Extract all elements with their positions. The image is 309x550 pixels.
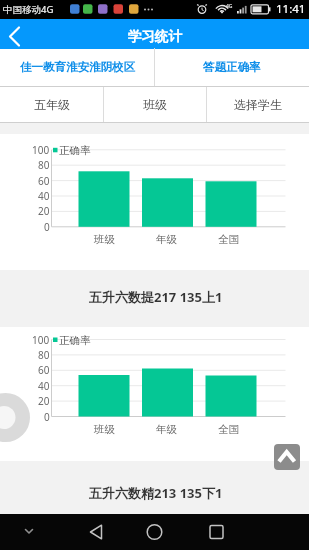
staticText: 学习统计	[128, 28, 182, 45]
staticText: 0	[44, 220, 50, 234]
button[interactable]	[202, 517, 231, 547]
staticText: 80	[38, 348, 50, 362]
staticText: 100	[32, 333, 50, 347]
staticText: 五升六数精213 135下1	[89, 484, 223, 502]
staticText: 正确率	[59, 144, 91, 157]
staticText: 40	[38, 189, 50, 203]
staticText: 年级	[156, 423, 177, 436]
staticText: 五年级	[34, 97, 70, 112]
staticText: 班级	[94, 233, 115, 246]
staticText: 佳一教育淮安淮阴校区	[20, 60, 135, 74]
staticText: 60	[38, 174, 50, 188]
button[interactable]: 班级	[104, 87, 206, 122]
staticText: 全国	[218, 423, 239, 436]
staticText: 100	[32, 143, 50, 157]
staticText: 0	[44, 410, 50, 424]
staticText: 班级	[143, 97, 167, 112]
button[interactable]: 选择学生	[207, 87, 309, 122]
staticText: 11:41	[276, 1, 306, 17]
button[interactable]: 答题正确率	[155, 48, 309, 86]
staticText: 80	[38, 158, 50, 172]
button[interactable]	[140, 517, 169, 547]
staticText: 40	[38, 379, 50, 393]
staticText: 20	[38, 204, 50, 218]
staticText: 答题正确率	[203, 60, 261, 74]
staticText: 五升六数提217 135上1	[89, 288, 223, 306]
staticText: 60	[38, 363, 50, 377]
button[interactable]	[274, 444, 300, 470]
staticText: 班级	[94, 423, 115, 436]
button[interactable]	[18, 522, 40, 542]
staticText: 4G	[226, 3, 233, 10]
staticText: 年级	[156, 233, 177, 246]
button[interactable]: 佳一教育淮安淮阴校区	[0, 48, 154, 86]
staticText: 20	[38, 394, 50, 408]
staticText: 中国移动4G	[3, 3, 54, 16]
button[interactable]	[82, 517, 110, 547]
staticText: 选择学生	[234, 97, 282, 112]
staticText: 正确率	[59, 334, 91, 347]
button[interactable]	[0, 19, 40, 49]
button[interactable]: 五年级	[0, 87, 103, 122]
staticText: 全国	[218, 233, 239, 246]
